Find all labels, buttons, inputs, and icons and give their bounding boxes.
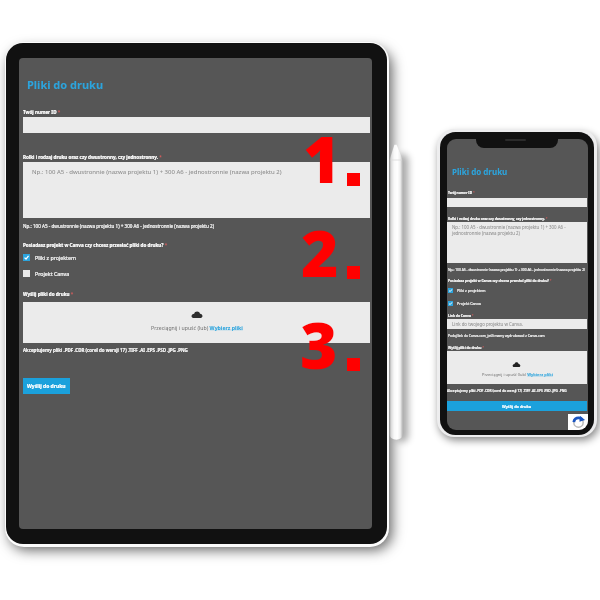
staticText: Pliki do druku xyxy=(452,166,508,177)
staticText: Link do Canva * xyxy=(448,313,474,317)
staticText: Rolki i rodzaj druku oraz czy dwustronny… xyxy=(23,154,162,160)
button[interactable]: Link do twojego projektu w Canva. xyxy=(447,319,587,329)
staticText: Przeciągnij i upuść (lub) Wybierz pliki xyxy=(482,372,553,377)
staticText: Posiadasz projekt w Canva czy chcesz prz… xyxy=(448,278,552,282)
staticText: Projekt Canva xyxy=(457,301,481,306)
staticText: Rolki i rodzaj druku oraz czy dwustronny… xyxy=(448,216,548,220)
staticText: Pliki z projektem xyxy=(35,254,76,261)
staticText: Wyślij pliki do druku * xyxy=(448,345,485,349)
button[interactable]: Projekt Canva xyxy=(23,270,70,277)
staticText: Wyślij pliki do druku * xyxy=(23,291,74,297)
button[interactable]: Pliki z projektem xyxy=(23,254,76,261)
staticText: 3 xyxy=(300,301,338,388)
button[interactable]: Np.: 100 A5 - dwustronnie (nazwa projekt… xyxy=(447,222,587,263)
staticText: Wyślij do druku xyxy=(27,383,66,390)
staticText: Akceptujemy pliki .PDF .CDR (corel do we… xyxy=(447,389,567,393)
staticText: Twój numer ID * xyxy=(23,109,61,115)
staticText: Projekt Canva xyxy=(35,270,70,277)
staticText: Przeciągnij i upuść (lub) Wybierz pliki xyxy=(151,324,243,331)
staticText: Posiadasz projekt w Canva czy chcesz prz… xyxy=(23,242,168,248)
staticText: Wyślij do druku xyxy=(502,404,532,409)
staticText: Pliki do druku xyxy=(27,77,104,92)
staticText: Np.: 100 A5 - dwustronnie (nazwa projekt… xyxy=(452,224,580,236)
staticText: Podaj link do Canva.com, jeśli mamy wydr… xyxy=(448,333,545,337)
staticText: Np.: 100 A5 - dwustronnie (nazwa projekt… xyxy=(32,168,282,176)
staticText: Np.: 100 A5 - dwustronnie (nazwa projekt… xyxy=(448,267,586,271)
button[interactable]: Wyślij pliki do druku xyxy=(447,351,587,384)
staticText: Np.: 100 A5 - dwustronnie (nazwa projekt… xyxy=(23,223,215,229)
button[interactable]: Np.: 100 A5 - dwustronnie (nazwa projekt… xyxy=(23,162,370,218)
button[interactable]: Pliki z projektem xyxy=(448,288,486,293)
staticText: Akceptujemy pliki .PDF .CDR (corel do we… xyxy=(23,347,188,353)
staticText: Pliki z projektem xyxy=(457,288,486,293)
staticText: Link do twojego projektu w Canva. xyxy=(452,321,523,327)
button[interactable]: Projekt Canva xyxy=(448,301,481,306)
staticText: 2 xyxy=(301,209,339,296)
button[interactable]: Wyślij do druku xyxy=(447,401,587,411)
staticText: 1 xyxy=(303,115,341,202)
button[interactable]: reCAPTCHA xyxy=(568,414,588,430)
button[interactable]: Wyślij do druku xyxy=(23,378,70,394)
staticText: Twój numer ID * xyxy=(448,190,475,194)
button[interactable]: Wyślij pliki do druku xyxy=(23,302,370,343)
